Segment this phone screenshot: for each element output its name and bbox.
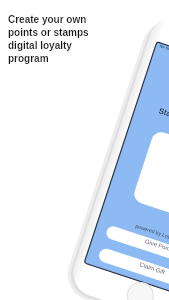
staticText: Create your own points or stamps digital… — [8, 14, 89, 65]
